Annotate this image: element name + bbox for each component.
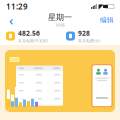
button[interactable]: 928 (60, 29, 120, 43)
staticText: 编辑 (100, 16, 114, 24)
button[interactable]: Back (4, 13, 18, 27)
staticText: 11:29 (6, 1, 28, 12)
button[interactable]: 编辑 (98, 13, 116, 27)
staticText: 星期一 (48, 12, 72, 22)
staticText: 482.56 (18, 29, 40, 38)
staticText: ◤ (98, 3, 103, 10)
staticText: ‹ (9, 11, 13, 29)
staticText: 本月电量(千瓦时) (18, 38, 48, 43)
button[interactable]: 482.56 (0, 29, 60, 43)
staticText: 928 (78, 29, 90, 38)
staticText: 本月电费(元) (78, 38, 100, 43)
staticText: 10:06 (55, 22, 64, 28)
